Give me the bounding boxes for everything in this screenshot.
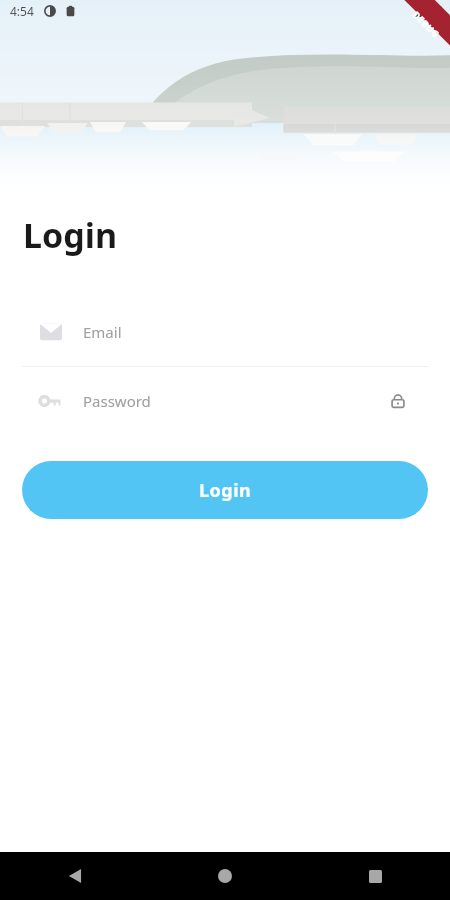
button[interactable]: Back — [0, 852, 150, 900]
staticText: Login — [199, 478, 252, 503]
button[interactable]: Password — [22, 367, 428, 435]
button[interactable]: Email — [22, 298, 428, 366]
button[interactable]: Login — [22, 461, 428, 519]
button[interactable]: Home — [150, 852, 300, 900]
staticText: Password — [83, 391, 151, 411]
staticText: DEBUG — [411, 8, 442, 40]
staticText: Login — [23, 212, 118, 258]
button[interactable]: Recent apps — [300, 852, 450, 900]
staticText: Email — [83, 322, 122, 342]
staticText: 4:54 — [10, 3, 34, 19]
button[interactable]: Toggle password visibility — [386, 389, 410, 413]
